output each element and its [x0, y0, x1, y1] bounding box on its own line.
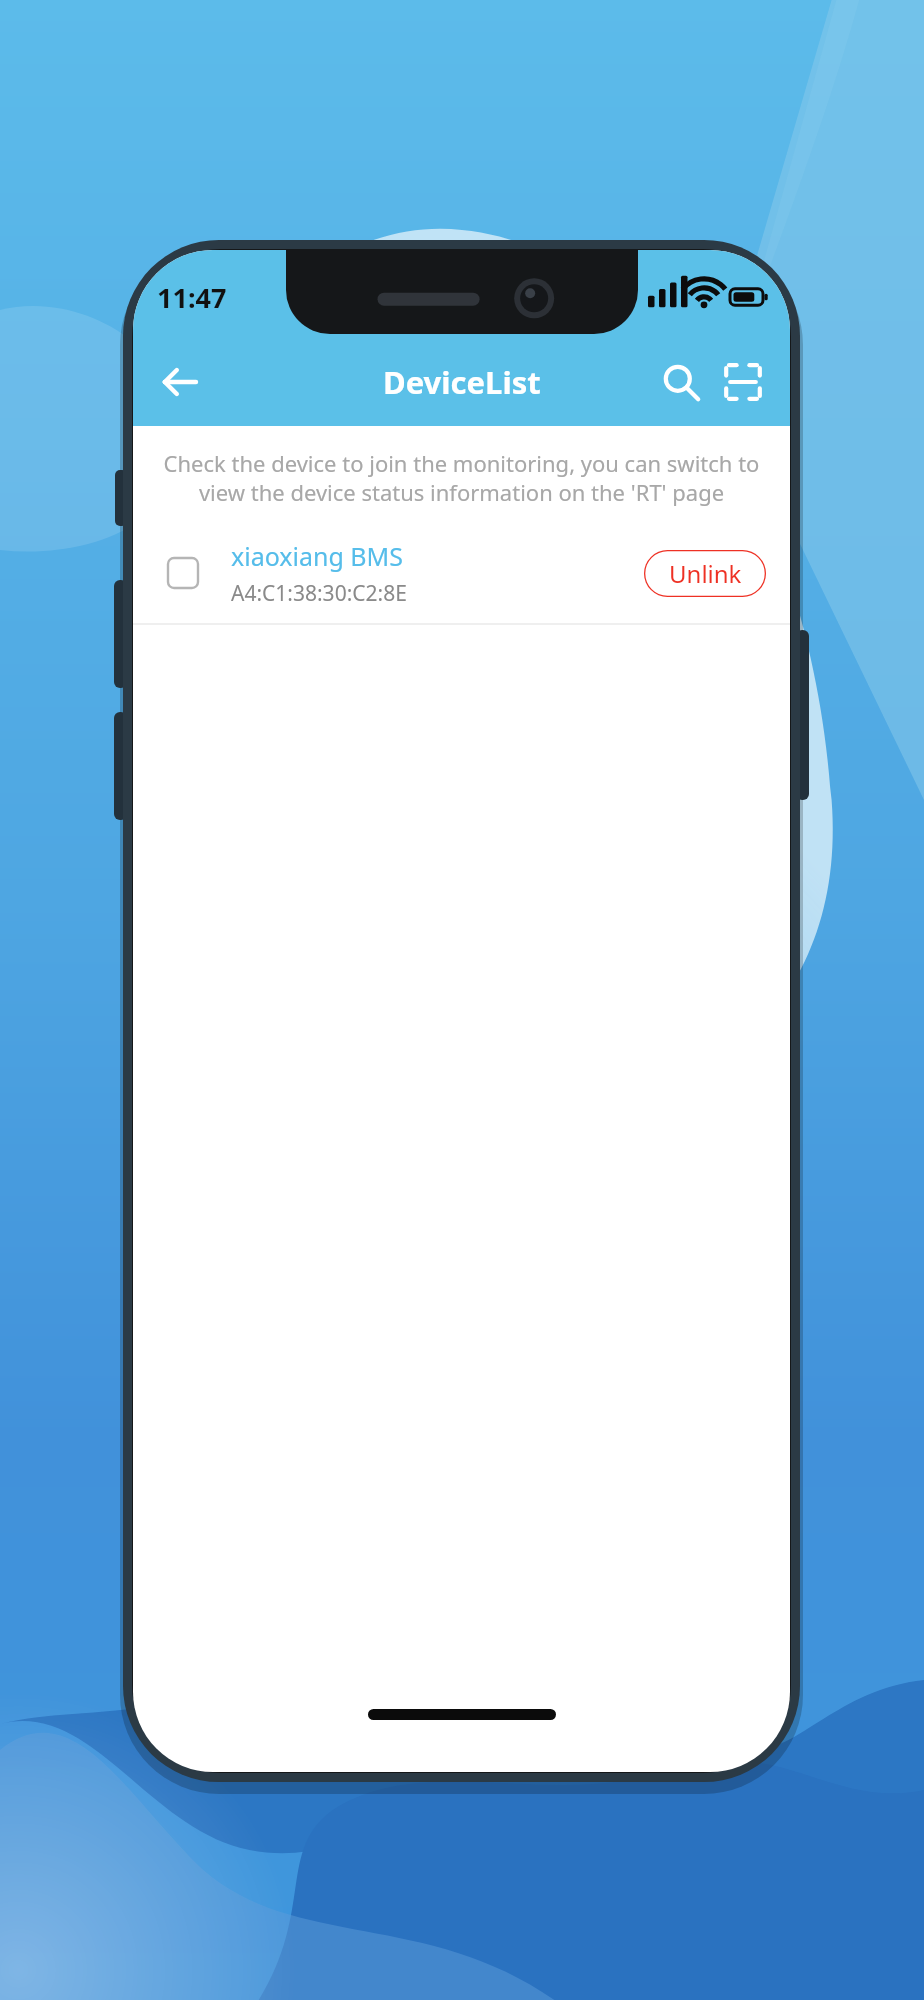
staticText: DeviceList	[383, 361, 541, 403]
staticText: A4:C1:38:30:C2:8E	[231, 579, 407, 608]
button[interactable]: Search	[650, 351, 712, 413]
button[interactable]: Scan QR code	[712, 351, 774, 413]
staticText: 11:47	[157, 279, 227, 316]
button[interactable]: Select device	[133, 523, 790, 623]
button[interactable]: Select device	[157, 547, 209, 599]
staticText: Check the device to join the monitoring,…	[159, 448, 764, 507]
staticText: xiaoxiang BMS	[231, 539, 404, 573]
button[interactable]: Unlink	[644, 550, 766, 597]
staticText: Unlink	[669, 557, 742, 590]
button[interactable]: Back	[149, 351, 211, 413]
